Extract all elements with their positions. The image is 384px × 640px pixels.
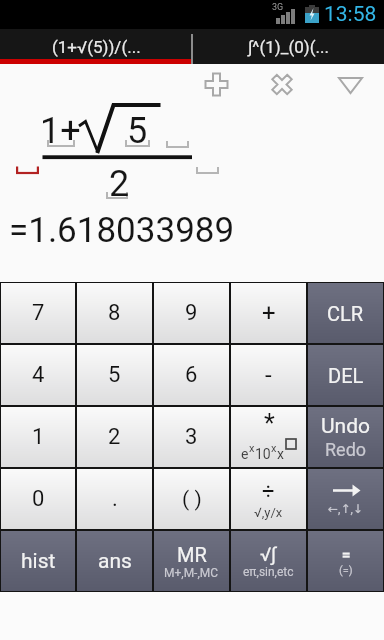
button[interactable]: hist xyxy=(1,531,75,591)
staticText: CLR xyxy=(327,302,364,325)
staticText: 2 xyxy=(108,424,121,450)
button[interactable]: 9 xyxy=(154,283,229,343)
button[interactable]: 5 xyxy=(77,345,152,405)
staticText: 3 xyxy=(185,424,198,450)
staticText: e xyxy=(241,446,249,462)
staticText: x xyxy=(271,442,277,455)
button[interactable]: ( ) xyxy=(154,469,229,529)
staticText: 9 xyxy=(185,300,198,326)
button[interactable]: ans xyxy=(77,531,152,591)
button[interactable]: = xyxy=(308,531,383,591)
button[interactable]: 1 xyxy=(1,407,75,467)
button[interactable]: * xyxy=(231,407,306,467)
button[interactable]: DEL xyxy=(308,345,383,405)
staticText: eπ,sin,etc xyxy=(243,565,294,579)
button[interactable]: CLR xyxy=(308,283,383,343)
staticText: 0 xyxy=(32,486,45,512)
button[interactable]: 0 xyxy=(1,469,75,529)
staticText: (1+√(5))/(... xyxy=(52,37,141,57)
button[interactable]: (1+√(5))/(... xyxy=(0,29,192,64)
button[interactable]: 2 xyxy=(77,407,152,467)
staticText: ans xyxy=(98,549,132,574)
staticText: x xyxy=(249,442,255,455)
staticText: + xyxy=(262,299,276,327)
staticText: ÷ xyxy=(262,479,275,505)
button[interactable]: + xyxy=(231,283,306,343)
button[interactable]: - xyxy=(231,345,306,405)
staticText: . xyxy=(112,486,118,512)
button[interactable]: 6 xyxy=(154,345,229,405)
button[interactable]: ÷ xyxy=(231,469,306,529)
staticText: Redo xyxy=(325,439,367,460)
staticText: 1 xyxy=(32,424,45,450)
staticText: ←,↑,↓ xyxy=(328,502,363,516)
staticText: ( ) xyxy=(182,487,202,512)
staticText: √,y/x xyxy=(254,505,283,520)
staticText: =1.618033989 xyxy=(9,210,235,251)
button[interactable]: 7 xyxy=(1,283,75,343)
staticText: x xyxy=(277,446,284,462)
button[interactable]: ∫^(1)_(0)(... xyxy=(192,29,384,64)
staticText: 6 xyxy=(185,362,198,388)
staticText: 5 xyxy=(127,110,148,152)
button[interactable]: ←,↑,↓ xyxy=(308,469,383,529)
button[interactable]: 3 xyxy=(154,407,229,467)
staticText: = xyxy=(342,546,351,564)
staticText: MR xyxy=(177,543,207,566)
staticText: Undo xyxy=(321,414,371,439)
staticText: 5 xyxy=(108,362,121,388)
staticText: 1+ xyxy=(40,110,81,152)
staticText: 13:58 xyxy=(324,2,377,27)
staticText: 2 xyxy=(109,163,130,205)
button[interactable]: . xyxy=(77,469,152,529)
button[interactable]: 8 xyxy=(77,283,152,343)
staticText: 4 xyxy=(32,362,45,388)
staticText: (=) xyxy=(339,564,353,577)
staticText: 7 xyxy=(32,300,45,326)
button[interactable]: √∫ xyxy=(231,531,306,591)
staticText: M+,M-,MC xyxy=(164,566,219,580)
button[interactable]: 4 xyxy=(1,345,75,405)
staticText: 8 xyxy=(108,300,121,326)
staticText: 3G xyxy=(272,2,284,13)
staticText: √∫ xyxy=(260,543,277,565)
button[interactable]: MR xyxy=(154,531,229,591)
staticText: - xyxy=(265,361,272,389)
staticText: * xyxy=(264,409,275,438)
staticText: DEL xyxy=(328,364,364,387)
staticText: hist xyxy=(21,549,56,574)
button[interactable]: Undo xyxy=(308,407,383,467)
staticText: ∫^(1)_(0)(... xyxy=(248,37,329,57)
staticText: 10 xyxy=(255,446,271,462)
